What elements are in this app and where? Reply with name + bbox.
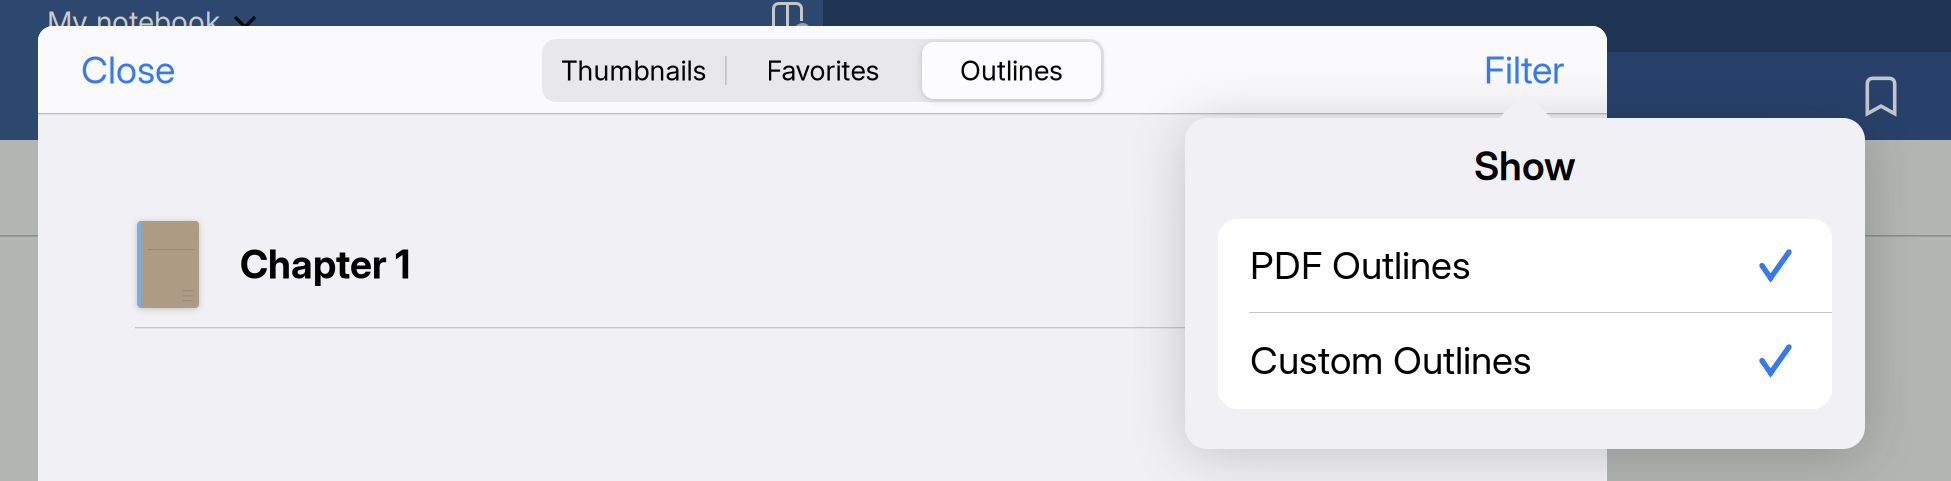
staticText: PDF Outlines bbox=[1250, 242, 1471, 288]
staticText: Show bbox=[1474, 142, 1576, 190]
button[interactable]: Chapter 1 bbox=[135, 212, 1569, 332]
button[interactable]: Filter bbox=[1444, 52, 1564, 88]
button[interactable]: Outlines bbox=[922, 39, 1101, 102]
button[interactable]: Bookmark bbox=[1851, 66, 1911, 126]
button[interactable]: Thumbnails bbox=[542, 39, 725, 102]
staticText: Custom Outlines bbox=[1250, 337, 1532, 383]
staticText: Favorites bbox=[766, 54, 879, 87]
staticText: Filter bbox=[1484, 47, 1564, 93]
staticText: Chapter 1 bbox=[240, 241, 410, 288]
staticText: Thumbnails bbox=[560, 54, 706, 87]
button[interactable]: My notebook bbox=[47, 2, 257, 42]
button[interactable]: Page view bbox=[772, 2, 811, 36]
button[interactable]: PDF Outlines bbox=[1218, 219, 1832, 313]
staticText: Outlines bbox=[960, 54, 1063, 87]
button[interactable]: Close bbox=[81, 52, 221, 88]
button[interactable]: Custom Outlines bbox=[1218, 313, 1832, 409]
staticText: Close bbox=[81, 47, 175, 93]
staticText: My notebook bbox=[47, 5, 220, 39]
button[interactable]: Favorites bbox=[726, 39, 920, 102]
